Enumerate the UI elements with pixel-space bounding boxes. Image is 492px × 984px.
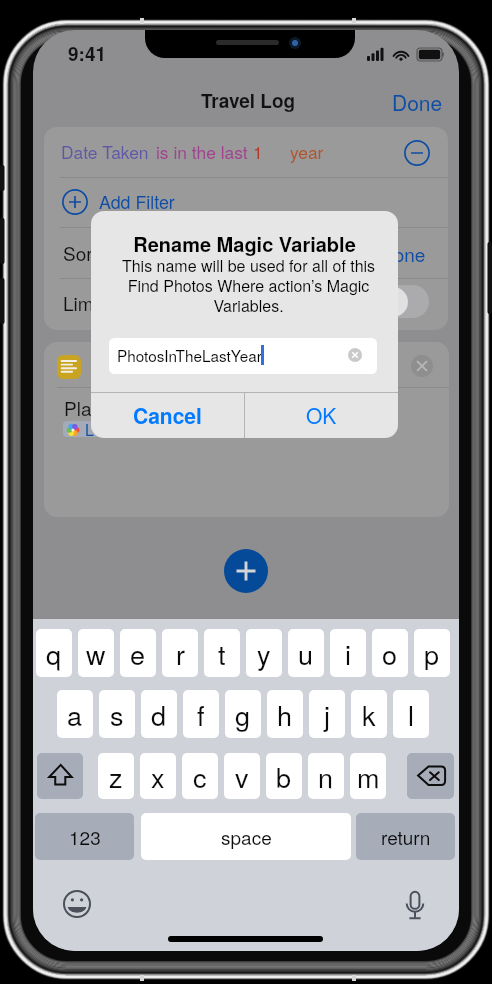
staticText: space <box>221 823 272 850</box>
staticText: h <box>277 695 293 734</box>
button[interactable]: p <box>414 629 450 677</box>
button[interactable]: return <box>356 813 455 860</box>
button[interactable]: PhotosInTheLastYear <box>109 338 377 374</box>
button[interactable]: n <box>308 753 344 799</box>
button[interactable] <box>44 178 448 228</box>
staticText: Location <box>85 418 146 441</box>
staticText: Travel Log <box>201 87 296 114</box>
staticText: o <box>382 634 398 673</box>
button[interactable]: Remove action <box>411 355 433 377</box>
button[interactable]: q <box>36 629 72 677</box>
staticText: n <box>318 757 334 796</box>
staticText: 123 <box>69 823 101 850</box>
staticText: Add Filter <box>99 189 175 214</box>
button[interactable]: Cancel <box>91 392 244 438</box>
staticText: Sort <box>63 239 99 266</box>
button[interactable]: Shift <box>37 753 83 799</box>
staticText: y <box>257 634 271 673</box>
staticText: w <box>86 634 106 673</box>
staticText: is in the last <box>156 139 248 164</box>
button[interactable]: Emoji keyboard <box>63 890 91 918</box>
staticText: Done <box>380 240 426 267</box>
staticText: Date Taken <box>61 139 149 164</box>
button[interactable]: r <box>162 629 198 677</box>
staticText: s <box>110 695 124 734</box>
button[interactable] <box>44 127 448 177</box>
staticText: Limit <box>63 289 104 316</box>
button[interactable]: i <box>330 629 366 677</box>
staticText: This name will be used for all of this F… <box>113 254 384 317</box>
staticText: 1 <box>253 139 263 164</box>
button[interactable] <box>44 228 448 277</box>
button[interactable]: f <box>183 690 219 738</box>
button[interactable]: c <box>182 753 218 799</box>
staticText: k <box>362 695 376 734</box>
button[interactable]: Backspace <box>407 753 454 799</box>
staticText: j <box>324 695 330 734</box>
button[interactable] <box>44 342 449 387</box>
button[interactable]: space <box>141 813 351 860</box>
button[interactable]: b <box>266 753 302 799</box>
button[interactable]: u <box>288 629 324 677</box>
button[interactable]: s <box>99 690 135 738</box>
staticText: Cancel <box>133 400 202 430</box>
button[interactable]: e <box>120 629 156 677</box>
staticText: e <box>130 634 146 673</box>
button[interactable]: k <box>351 690 387 738</box>
staticText: q <box>46 634 62 673</box>
staticText: OK <box>306 400 337 430</box>
staticText: Place <box>64 394 112 421</box>
staticText: l <box>408 695 414 734</box>
button[interactable]: m <box>350 753 386 799</box>
button[interactable]: Limit toggle <box>376 285 429 318</box>
button[interactable]: z <box>98 753 134 799</box>
button[interactable]: 123 <box>35 813 134 860</box>
button[interactable] <box>44 279 448 331</box>
staticText: r <box>176 634 185 673</box>
button[interactable]: Add action <box>224 549 268 593</box>
button[interactable] <box>44 388 449 517</box>
staticText: t <box>218 634 226 673</box>
button[interactable]: Clear text <box>348 348 362 362</box>
button[interactable]: t <box>204 629 240 677</box>
button[interactable]: l <box>393 690 429 738</box>
staticText: Done <box>392 87 443 117</box>
staticText: b <box>276 757 292 796</box>
button[interactable]: x <box>140 753 176 799</box>
staticText: v <box>235 757 249 796</box>
staticText: return <box>381 823 431 850</box>
staticText: Rename Magic Variable <box>91 229 398 258</box>
button[interactable]: OK <box>245 392 398 438</box>
button[interactable]: o <box>372 629 408 677</box>
button[interactable]: d <box>141 690 177 738</box>
button[interactable]: y <box>246 629 282 677</box>
button[interactable]: w <box>78 629 114 677</box>
staticText: z <box>109 757 123 796</box>
staticText: m <box>357 757 380 796</box>
button[interactable]: Done <box>384 82 446 114</box>
button[interactable]: h <box>267 690 303 738</box>
staticText: u <box>298 634 314 673</box>
staticText: year <box>290 139 324 164</box>
button[interactable]: j <box>309 690 345 738</box>
button[interactable]: g <box>225 690 261 738</box>
staticText: i <box>345 634 351 673</box>
button[interactable]: v <box>224 753 260 799</box>
staticText: 9:41 <box>68 40 107 67</box>
button[interactable]: a <box>57 690 93 738</box>
staticText: c <box>193 757 207 796</box>
button[interactable]: Dictation <box>406 891 424 921</box>
staticText: f <box>197 695 205 734</box>
staticText: d <box>151 695 167 734</box>
staticText: x <box>151 757 165 796</box>
staticText: a <box>67 695 83 734</box>
staticText: PhotosInTheLastYear <box>117 344 262 366</box>
staticText: p <box>424 634 440 673</box>
staticText: g <box>235 695 251 734</box>
